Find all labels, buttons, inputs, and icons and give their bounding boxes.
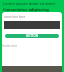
- staticText: Consectetur adipiscing: [3, 7, 49, 12]
- staticText: footer text: [2, 44, 62, 48]
- staticText: Lorem ipsum dolor sit amet: [3, 1, 55, 6]
- staticText: some text here: [4, 15, 26, 19]
- button[interactable]: BUTTON: [5, 34, 59, 38]
- staticText: BUTTON: [26, 34, 39, 38]
